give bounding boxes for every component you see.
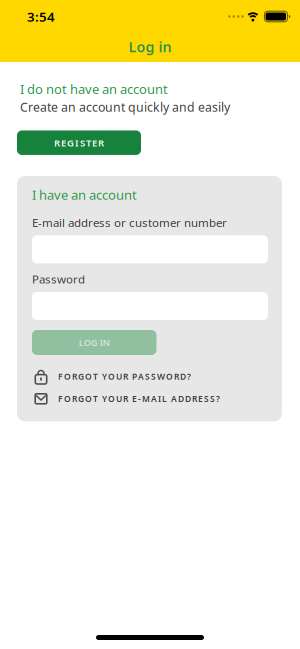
button[interactable]: F O R G O T Y O U R P A S S W O R D ? xyxy=(32,369,191,384)
button[interactable]: R E G I S T E R xyxy=(17,130,141,155)
staticText: I have an account xyxy=(32,186,137,204)
staticText: F O R G O T Y O U R P A S S W O R D ? xyxy=(58,371,191,382)
staticText: Password xyxy=(32,271,85,287)
button[interactable]: LOG IN xyxy=(32,330,156,355)
staticText: Log in xyxy=(128,37,171,56)
staticText: E-mail address or customer number xyxy=(32,215,227,230)
staticText: F O R G O T Y O U R E - M A I L A D D R … xyxy=(58,393,220,405)
staticText: LOG IN xyxy=(79,336,110,349)
button[interactable]: F O R G O T Y O U R E - M A I L A D D R … xyxy=(32,393,220,405)
staticText: R E G I S T E R xyxy=(54,136,104,149)
staticText: I do not have an account xyxy=(20,80,168,98)
staticText: Create an account quickly and easily xyxy=(20,99,230,115)
staticText: 3:54 xyxy=(27,7,55,25)
